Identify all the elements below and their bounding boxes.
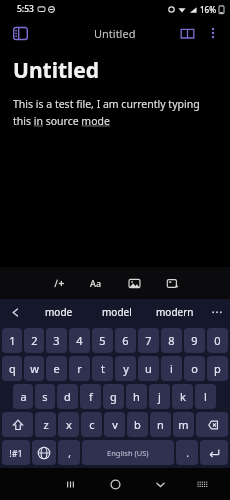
button[interactable]: , <box>58 440 80 465</box>
staticText: g <box>110 389 117 404</box>
staticText: c <box>89 417 95 432</box>
staticText: This is a test file, I am currently typi… <box>13 97 217 128</box>
staticText: modern <box>156 305 194 319</box>
button[interactable]: d <box>57 384 78 409</box>
staticText: 8 <box>168 333 175 348</box>
staticText: Untitled <box>94 26 136 41</box>
staticText: Untitled <box>13 56 100 85</box>
button[interactable]: k <box>172 384 193 409</box>
button[interactable]: 2 <box>24 328 44 353</box>
button[interactable]: i <box>161 356 182 381</box>
button[interactable]: s <box>35 384 55 409</box>
button[interactable]: h <box>126 384 147 409</box>
staticText: f <box>89 389 93 404</box>
button[interactable]: z <box>35 412 56 437</box>
staticText: q <box>9 361 16 376</box>
button[interactable]: More options <box>200 20 226 46</box>
button[interactable]: g <box>103 384 124 409</box>
button[interactable]: Insert <box>48 273 68 293</box>
staticText: m <box>178 417 189 432</box>
button[interactable]: 4 <box>69 328 90 353</box>
button[interactable]: Attach file <box>162 273 182 293</box>
staticText: s <box>42 389 48 404</box>
button[interactable]: q <box>2 356 22 381</box>
button[interactable]: Shift <box>2 412 33 437</box>
staticText: n <box>157 417 164 432</box>
staticText: r <box>77 361 82 376</box>
button[interactable]: c <box>81 412 102 437</box>
button[interactable]: Change language <box>32 440 56 465</box>
button[interactable]: 8 <box>161 328 182 353</box>
button[interactable]: Toggle side panel <box>8 21 32 45</box>
staticText: h <box>133 389 140 404</box>
staticText: j <box>158 389 161 404</box>
button[interactable]: Recent apps <box>48 468 93 500</box>
button[interactable]: y <box>115 356 136 381</box>
staticText: 4 <box>76 333 83 348</box>
button[interactable]: Enter <box>200 440 228 465</box>
button[interactable]: English (US) <box>82 440 174 465</box>
staticText: 5:53 <box>17 3 34 15</box>
button[interactable]: l <box>195 384 216 409</box>
staticText: u <box>145 361 152 376</box>
staticText: mode <box>45 305 73 319</box>
staticText: d <box>64 389 71 404</box>
staticText: y <box>123 361 129 376</box>
button[interactable]: e <box>46 356 67 381</box>
staticText: o <box>191 361 198 376</box>
button[interactable]: f <box>80 384 101 409</box>
button[interactable]: m <box>173 412 194 437</box>
button[interactable]: 0 <box>207 328 228 353</box>
button[interactable]: a <box>13 384 33 409</box>
button[interactable]: b <box>127 412 148 437</box>
staticText: k <box>180 389 186 404</box>
button[interactable]: u <box>138 356 159 381</box>
button[interactable]: 9 <box>184 328 205 353</box>
button[interactable]: !#1 <box>2 440 30 465</box>
button[interactable]: modern <box>146 299 204 325</box>
staticText: 5 <box>99 333 106 348</box>
staticText: . <box>186 446 189 460</box>
button[interactable]: x <box>58 412 79 437</box>
staticText: model <box>102 305 132 319</box>
staticText: Aa <box>90 277 102 289</box>
button[interactable]: . <box>176 440 198 465</box>
button[interactable]: w <box>24 356 44 381</box>
button[interactable]: Hide keyboard <box>138 468 183 500</box>
staticText: v <box>112 417 118 432</box>
button[interactable]: 5 <box>92 328 113 353</box>
button[interactable]: Previous <box>0 299 30 325</box>
button[interactable]: More suggestions <box>204 299 230 325</box>
button[interactable]: Reading mode <box>174 20 200 46</box>
staticText: 16% <box>200 4 216 15</box>
button[interactable]: mode <box>30 299 88 325</box>
staticText: 2 <box>31 333 38 348</box>
staticText: b <box>134 417 141 432</box>
button[interactable]: model <box>88 299 146 325</box>
button[interactable]: Insert image <box>124 273 144 293</box>
button[interactable]: 3 <box>46 328 67 353</box>
button[interactable]: n <box>150 412 171 437</box>
staticText: x <box>66 417 72 432</box>
staticText: 9 <box>191 333 198 348</box>
button[interactable]: 6 <box>115 328 136 353</box>
staticText: 3 <box>53 333 60 348</box>
button[interactable]: t <box>92 356 113 381</box>
staticText: a <box>20 389 27 404</box>
staticText: t <box>101 361 105 376</box>
button[interactable]: o <box>184 356 205 381</box>
button[interactable]: Backspace <box>196 412 228 437</box>
button[interactable]: v <box>104 412 125 437</box>
button[interactable]: Text format <box>86 273 106 293</box>
button[interactable]: 7 <box>138 328 159 353</box>
button[interactable]: Switch keyboard <box>183 468 221 500</box>
staticText: i <box>170 361 173 376</box>
staticText: w <box>30 361 39 376</box>
staticText: 0 <box>214 333 221 348</box>
button[interactable]: j <box>149 384 170 409</box>
button[interactable]: Home <box>93 468 138 500</box>
button[interactable]: p <box>207 356 228 381</box>
staticText: 1 <box>9 333 16 348</box>
button[interactable]: 1 <box>2 328 22 353</box>
button[interactable]: r <box>69 356 90 381</box>
